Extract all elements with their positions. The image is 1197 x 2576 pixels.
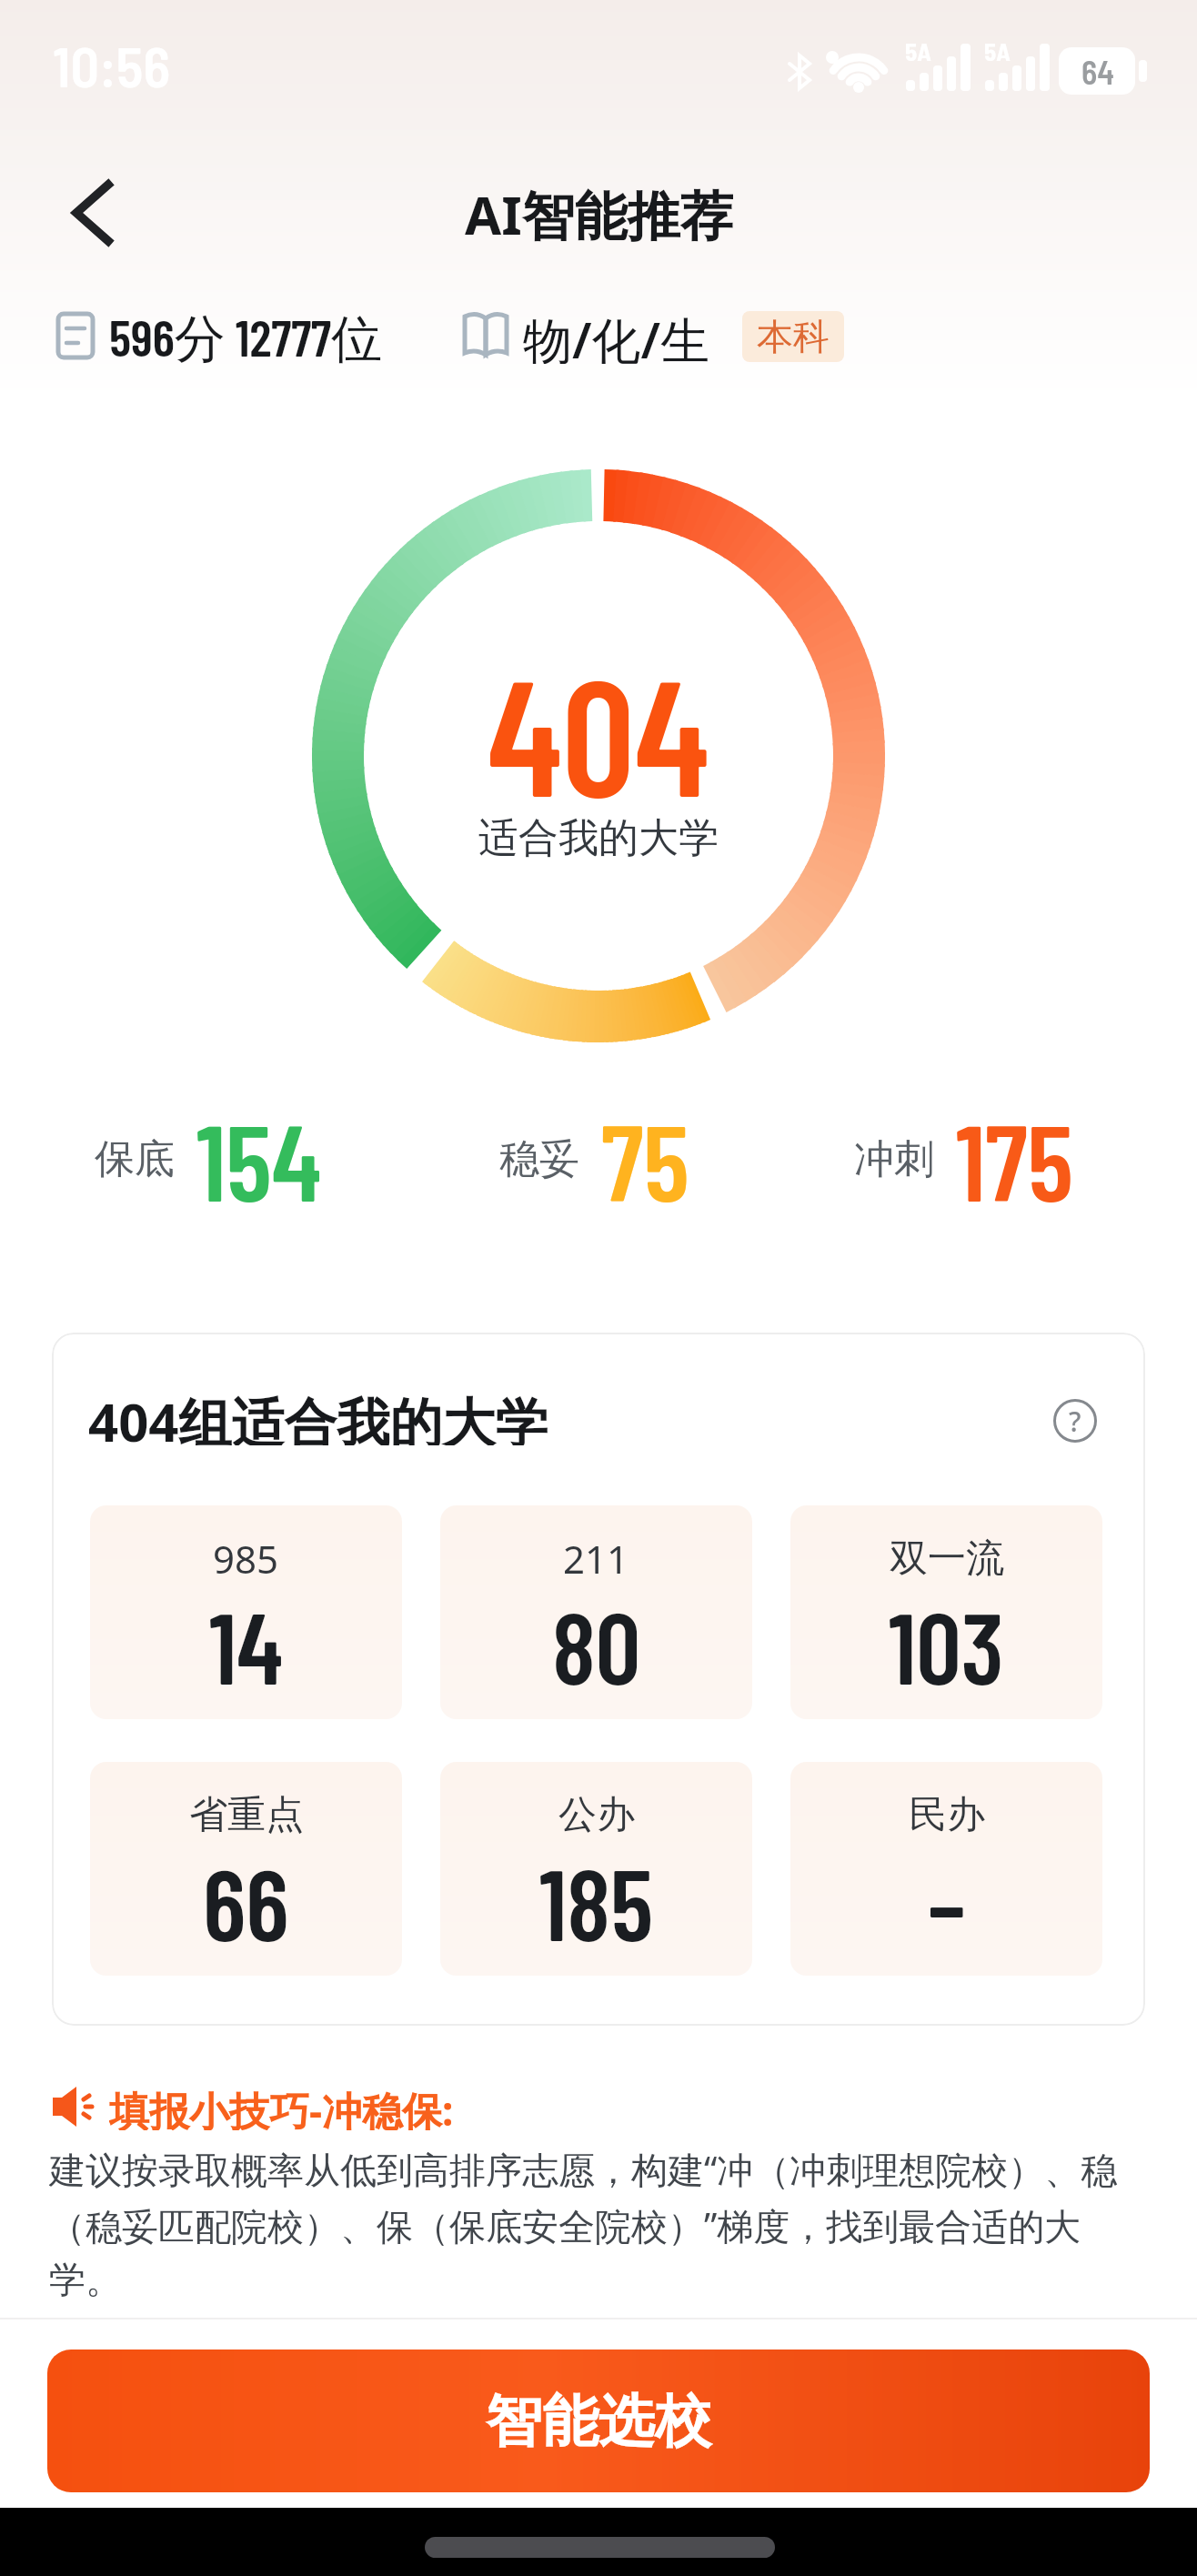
staticText: 154 — [196, 1094, 321, 1223]
button[interactable] — [55, 173, 136, 255]
staticText: （稳妥匹配院校）、保（保底安全院校）”梯度，找到最合适的大 — [49, 2200, 1081, 2246]
staticText: 适合我的大学 — [478, 813, 719, 863]
staticText: 填报小技巧-冲稳保: — [109, 2083, 454, 2130]
staticText: 103 — [889, 1585, 1004, 1705]
staticText: 404组适合我的大学 — [88, 1385, 548, 1445]
button[interactable]: 双一流 — [790, 1505, 1102, 1719]
staticText: 14 — [209, 1585, 283, 1705]
staticText: 公办 — [558, 1791, 635, 1839]
staticText: – — [928, 1841, 966, 1961]
button[interactable]: 985 — [90, 1505, 402, 1719]
staticText: 5A — [984, 36, 1011, 65]
staticText: 185 — [539, 1841, 653, 1961]
staticText: 双一流 — [890, 1535, 1004, 1583]
staticText: 冲刺 — [854, 1134, 934, 1184]
button[interactable]: ? — [1053, 1399, 1097, 1443]
staticText: 64 — [1081, 52, 1115, 91]
button[interactable]: 智能选校 — [47, 2350, 1150, 2492]
staticText: 省重点 — [189, 1791, 304, 1839]
staticText: 保底 — [95, 1134, 175, 1184]
staticText: 智能选校 — [486, 2386, 711, 2457]
staticText: ? — [1069, 1403, 1081, 1440]
staticText: 80 — [552, 1585, 641, 1705]
staticText: 985 — [213, 1533, 279, 1585]
button[interactable]: 省重点 — [90, 1762, 402, 1976]
staticText: AI智能推荐 — [465, 178, 733, 247]
staticText: 404 — [488, 635, 709, 826]
staticText: 物/化/生 — [523, 306, 710, 364]
button[interactable]: 公办 — [440, 1762, 752, 1976]
staticText: 民办 — [909, 1791, 985, 1839]
staticText: 75 — [601, 1094, 689, 1223]
staticText: 建议按录取概率从低到高排序志愿，构建“冲（冲刺理想院校）、稳 — [49, 2144, 1118, 2189]
button[interactable]: 民办 — [790, 1762, 1102, 1976]
staticText: 学。 — [49, 2257, 122, 2302]
button[interactable]: 211 — [440, 1505, 752, 1719]
staticText: 稳妥 — [499, 1134, 579, 1184]
staticText: 211 — [563, 1533, 629, 1585]
staticText: 66 — [203, 1841, 289, 1961]
staticText: 596分 12777位 — [109, 306, 383, 364]
staticText: 10:56 — [53, 31, 171, 93]
staticText: 5A — [905, 36, 931, 65]
staticText: 本科 — [757, 314, 830, 359]
staticText: 175 — [956, 1094, 1074, 1223]
